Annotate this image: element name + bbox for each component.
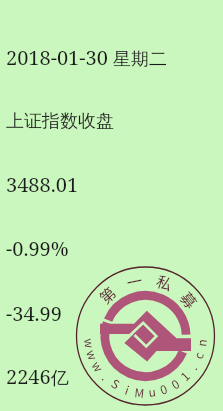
staticText: -0.99%	[6, 235, 69, 262]
staticText: 3488.01	[6, 171, 79, 198]
staticText: -34.99	[6, 300, 62, 327]
staticText: 2246亿	[6, 363, 69, 390]
staticText: 上证指数收盘	[6, 110, 114, 133]
staticText: 2018-01-30 星期二	[6, 44, 168, 71]
